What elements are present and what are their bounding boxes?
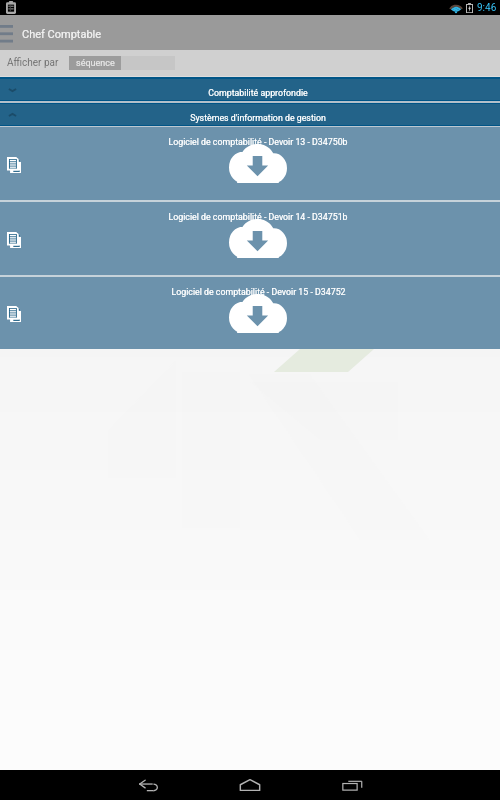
button[interactable]: séquence [69,56,121,70]
button[interactable]: Open navigation menu [0,15,22,50]
staticText: Afficher par [7,57,59,69]
button[interactable]: Recent apps [301,770,403,800]
staticText: séquence [76,58,115,69]
button[interactable]: Home [199,770,301,800]
staticText: Logiciel de comptabilité - Devoir 14 - D… [168,212,348,222]
button[interactable]: Expand section [0,79,500,100]
button[interactable]: Collapse section [0,104,24,125]
button[interactable]: Back [97,770,199,800]
other: Document [7,157,21,173]
button[interactable]: Collapse section [0,104,500,125]
staticText: 9:46 [477,2,497,14]
staticText: Logiciel de comptabilité - Devoir 13 - D… [168,137,348,147]
staticText: Comptabilité approfondie [208,88,308,98]
other: Document [7,232,21,248]
button[interactable]: Expand section [0,79,24,100]
staticText: Systèmes d'information de gestion [190,113,326,123]
other: Document [7,306,21,322]
button[interactable]: Document [0,202,500,275]
staticText: Logiciel de comptabilité - Devoir 15 - D… [171,287,346,297]
staticText: Chef Comptable [22,28,102,41]
button[interactable]: Document [0,127,500,200]
button[interactable]: Document [0,277,500,349]
